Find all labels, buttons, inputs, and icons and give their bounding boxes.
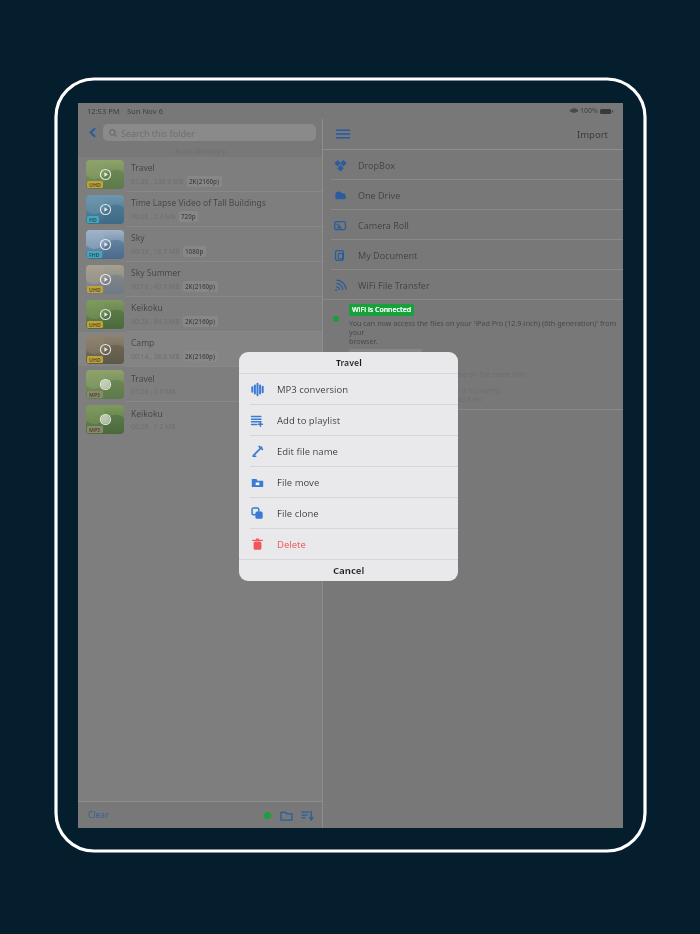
- staticText: http://10.0.0.8:8080: [352, 350, 419, 360]
- staticText: UHD: [89, 286, 101, 293]
- staticText: You cannot download a file while it is p…: [349, 385, 502, 405]
- staticText: UHD: [89, 321, 101, 328]
- staticText: 2K(2160p): [185, 282, 216, 291]
- button[interactable]: Clear: [86, 807, 111, 823]
- button[interactable]: FHD: [78, 227, 322, 261]
- button[interactable]: Sort: [300, 808, 314, 822]
- button[interactable]: One Drive: [323, 180, 623, 209]
- button[interactable]: Add to playlist: [239, 405, 458, 435]
- staticText: Camp: [131, 337, 155, 349]
- button[interactable]: Camera Roll: [323, 210, 623, 239]
- staticText: MP3: [89, 426, 101, 433]
- button[interactable]: MP3: [78, 402, 322, 436]
- staticText: MP3 conversion: [277, 383, 349, 396]
- staticText: Keikoku: [131, 408, 163, 420]
- staticText: UHD: [89, 181, 101, 188]
- button[interactable]: Edit file name: [239, 436, 458, 466]
- button[interactable]: UHD: [78, 297, 322, 331]
- button[interactable]: Search this folder: [103, 124, 316, 141]
- staticText: Sky: [131, 232, 145, 244]
- button[interactable]: UHD: [78, 157, 322, 191]
- staticText: Cancel: [333, 564, 365, 577]
- staticText: 00:14 , 38.8 MB: [131, 352, 180, 361]
- staticText: 2K(2160p): [189, 177, 220, 186]
- button[interactable]: My Document: [323, 240, 623, 269]
- staticText: 01:26 , 238.9 MB: [131, 177, 184, 186]
- staticText: 00:28 , 84.3 MB: [131, 317, 180, 326]
- staticText: 00:08 , 2.3 MB: [131, 212, 176, 221]
- staticText: Sky Summer: [131, 267, 181, 279]
- staticText: Clear: [88, 809, 109, 821]
- button[interactable]: MP3 conversion: [239, 374, 458, 404]
- staticText: WiFi is Connected: [352, 305, 411, 315]
- button[interactable]: Cancel: [239, 560, 458, 581]
- staticText: Travel: [131, 373, 155, 385]
- button[interactable]: UHD: [78, 332, 322, 366]
- button[interactable]: WiFi File Transfer: [323, 270, 623, 299]
- staticText: WiFi File Transfer: [358, 279, 430, 291]
- staticText: Search this folder: [121, 127, 195, 139]
- staticText: Import: [577, 128, 609, 141]
- staticText: Sun Nov 6: [127, 106, 163, 116]
- staticText: Delete: [277, 538, 306, 551]
- staticText: 1080p: [185, 247, 204, 256]
- staticText: Add to playlist: [277, 414, 341, 427]
- button[interactable]: DropBox: [323, 150, 623, 179]
- staticText: You can now access the files on your 'iP…: [349, 318, 617, 347]
- button[interactable]: UHD: [78, 262, 322, 296]
- staticText: My Document: [358, 249, 418, 261]
- staticText: 12:53 PM: [87, 106, 120, 116]
- staticText: One Drive: [358, 189, 401, 201]
- staticText: 100%: [580, 106, 598, 116]
- staticText: HD: [89, 216, 97, 223]
- staticText: DropBox: [358, 159, 395, 171]
- staticText: Travel: [131, 162, 155, 174]
- staticText: UHD: [89, 356, 101, 363]
- staticText: Keikoku: [131, 302, 163, 314]
- staticText: Camera Roll: [358, 219, 409, 231]
- button[interactable]: Menu: [334, 125, 352, 143]
- staticText: MP3: [89, 391, 101, 398]
- staticText: 00:28 , 1.2 MB: [131, 422, 176, 431]
- staticText: FHD: [89, 251, 100, 258]
- staticText: 01:26 , 3.0 MB: [131, 387, 176, 396]
- staticText: Your device and computer must be on the …: [349, 369, 529, 379]
- staticText: 720p: [181, 212, 196, 221]
- staticText: 2K(2160p): [185, 317, 216, 326]
- button[interactable]: Import: [574, 125, 612, 144]
- staticText: Time Lapse Video of Tall Buildings: [131, 197, 266, 209]
- button[interactable]: File clone: [239, 498, 458, 528]
- button[interactable]: New folder: [279, 808, 293, 822]
- staticText: Edit file name: [277, 445, 338, 458]
- button[interactable]: File move: [239, 467, 458, 497]
- button[interactable]: MP3: [78, 367, 322, 401]
- staticText: File clone: [277, 507, 319, 520]
- staticText: 2K(2160p): [185, 352, 216, 361]
- button[interactable]: HD: [78, 192, 322, 226]
- staticText: 00:33 , 18.7 MB: [131, 247, 180, 256]
- button[interactable]: Delete: [239, 529, 458, 559]
- button[interactable]: http://10.0.0.8:8080: [352, 350, 419, 360]
- button[interactable]: Back: [84, 124, 100, 140]
- staticText: Travel: [336, 357, 362, 369]
- staticText: 00:16 , 43.7 MB: [131, 282, 180, 291]
- staticText: File move: [277, 476, 320, 489]
